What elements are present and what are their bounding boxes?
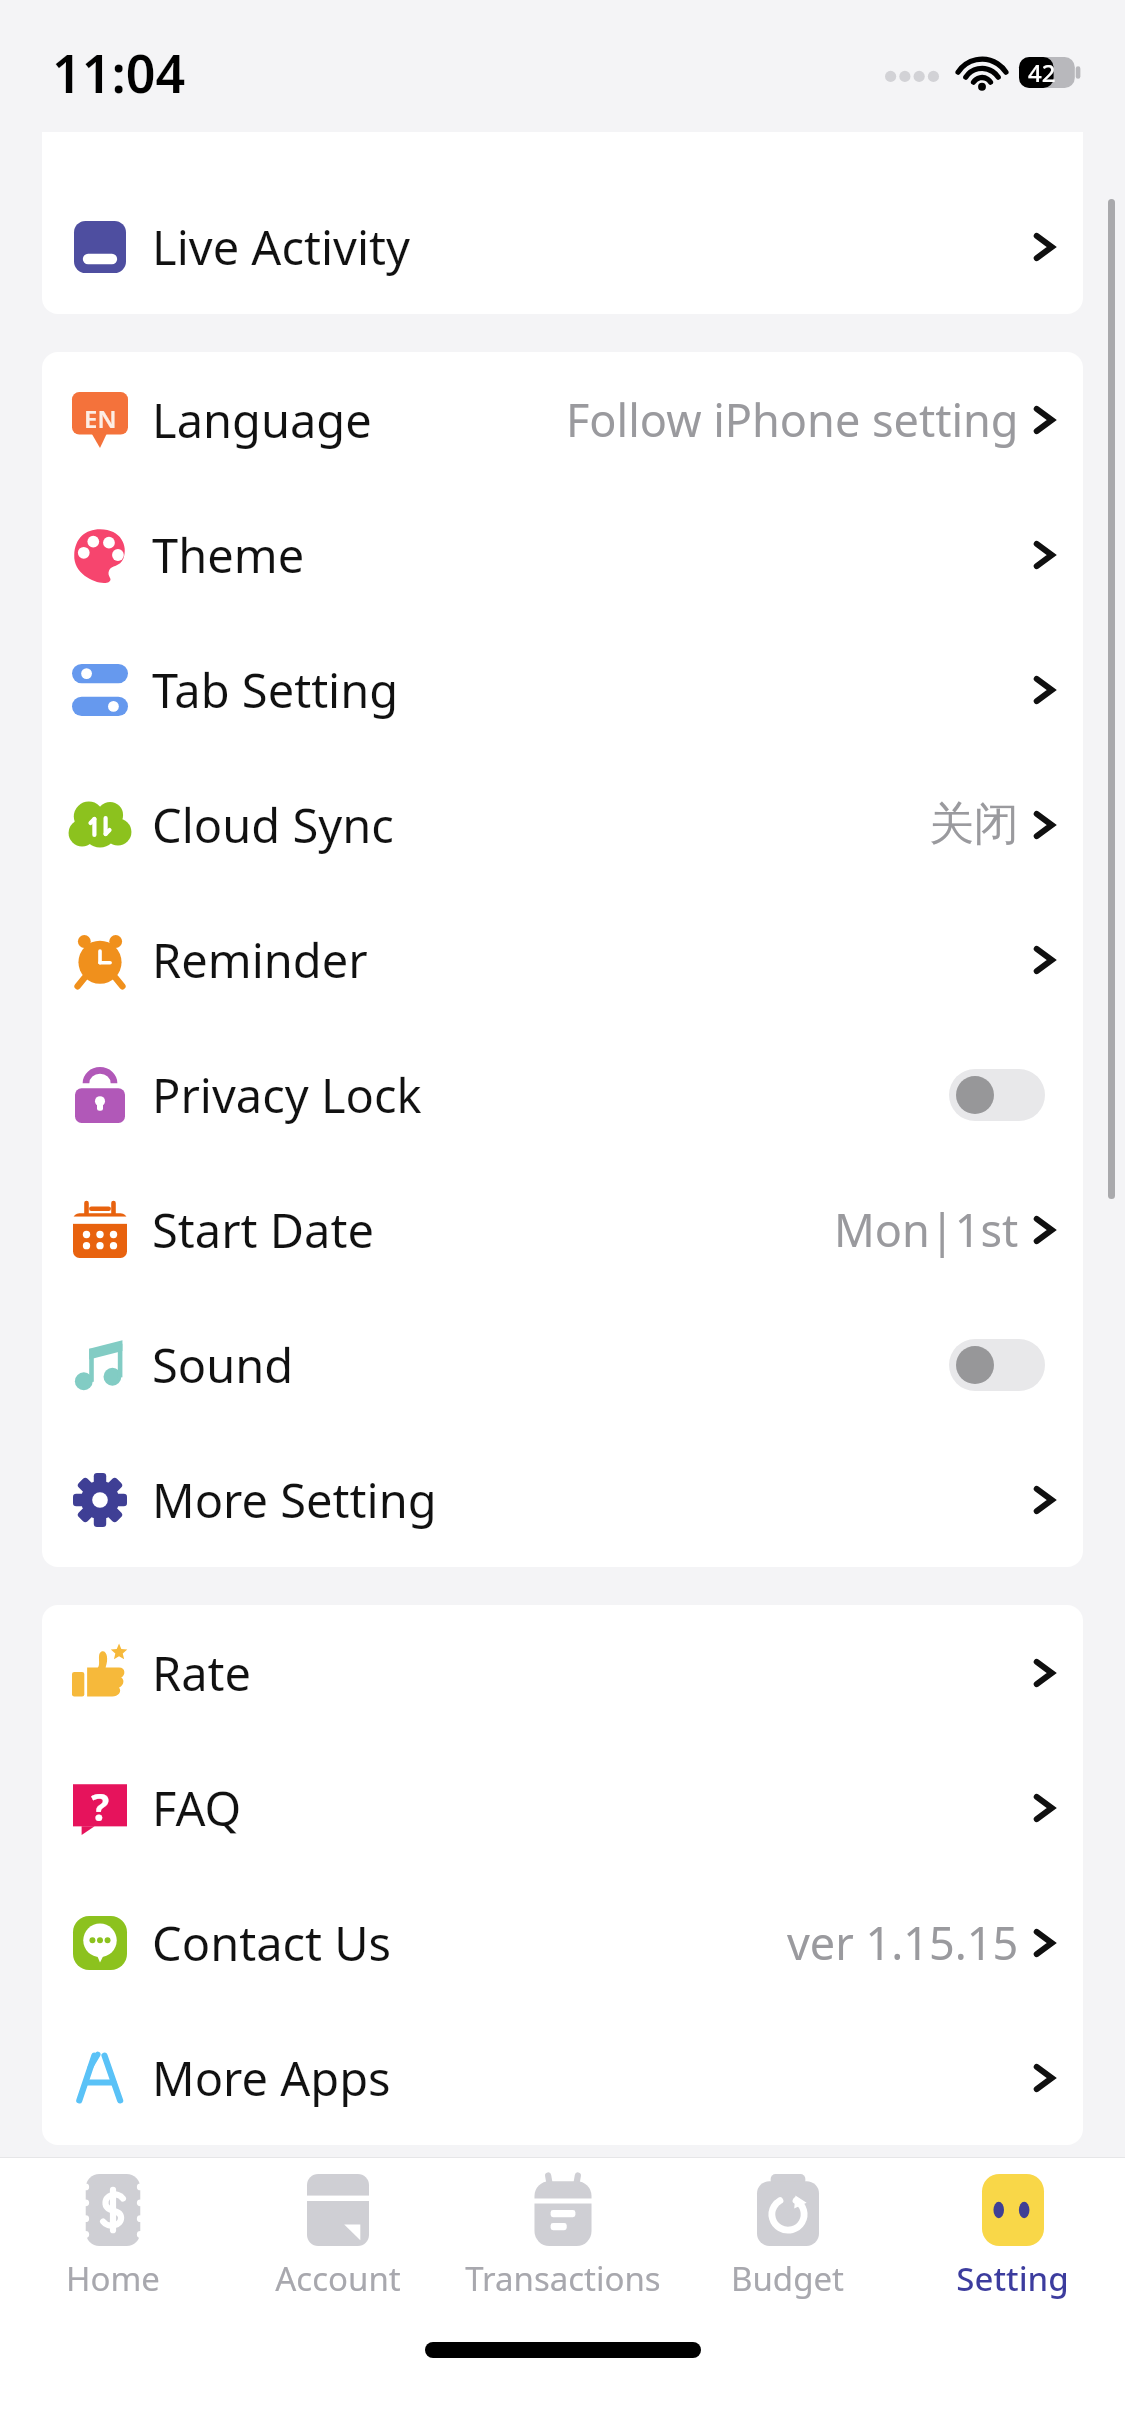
button[interactable]: Theme: [42, 487, 1083, 622]
staticText: Sound: [152, 1333, 294, 1397]
button[interactable]: Start Date: [42, 1162, 1083, 1297]
other: Budget: [757, 2174, 819, 2246]
staticText: Setting: [956, 2256, 1069, 2301]
button[interactable]: Tab Setting: [42, 622, 1083, 757]
staticText: Rate: [152, 1641, 252, 1705]
staticText: ?: [91, 1780, 110, 1832]
staticText: 11:04: [52, 37, 186, 108]
button[interactable]: Cloud Sync: [42, 757, 1083, 892]
staticText: Language: [152, 388, 372, 452]
button[interactable]: More Setting: [42, 1432, 1083, 1567]
staticText: Budget: [731, 2256, 844, 2301]
staticText: Transactions: [465, 2256, 661, 2301]
button[interactable]: More Apps: [42, 2010, 1083, 2145]
button[interactable]: Privacy Lock: [42, 1027, 1083, 1162]
staticText: 关闭: [929, 796, 1019, 853]
button[interactable]: Home: [0, 2158, 225, 2316]
button[interactable]: Toggle: [949, 1069, 1045, 1121]
button[interactable]: ?: [42, 1740, 1083, 1875]
button[interactable]: Sound: [42, 1297, 1083, 1432]
staticText: 42: [1028, 56, 1056, 89]
staticText: Privacy Lock: [152, 1063, 422, 1127]
other: Transactions: [532, 2174, 594, 2246]
staticText: Home: [66, 2256, 160, 2301]
staticText: More Apps: [152, 2046, 391, 2110]
button[interactable]: Account: [225, 2158, 450, 2316]
staticText: Mon|1st: [834, 1199, 1019, 1260]
staticText: Account: [275, 2256, 401, 2301]
button[interactable]: Transactions: [450, 2158, 675, 2316]
staticText: Follow iPhone setting: [566, 389, 1019, 450]
staticText: Cloud Sync: [152, 793, 394, 857]
staticText: Theme: [152, 523, 305, 587]
other: Account: [307, 2174, 369, 2246]
staticText: Tab Setting: [152, 658, 399, 722]
button[interactable]: Reminder: [42, 892, 1083, 1027]
button[interactable]: Rate: [42, 1605, 1083, 1740]
staticText: Contact Us: [152, 1911, 392, 1975]
staticText: ver 1.15.15: [787, 1912, 1019, 1973]
staticText: EN: [84, 402, 117, 435]
staticText: Reminder: [152, 928, 368, 992]
button[interactable]: Live Activity: [42, 179, 1083, 314]
other: Home: [82, 2174, 144, 2246]
staticText: More Setting: [152, 1468, 437, 1532]
staticText: Live Activity: [152, 215, 410, 279]
button[interactable]: Contact Us: [42, 1875, 1083, 2010]
button[interactable]: EN: [42, 352, 1083, 487]
staticText: FAQ: [152, 1776, 242, 1840]
button[interactable]: Setting: [900, 2158, 1125, 2316]
button[interactable]: Budget: [675, 2158, 900, 2316]
button[interactable]: Toggle: [949, 1339, 1045, 1391]
staticText: Start Date: [152, 1198, 374, 1262]
